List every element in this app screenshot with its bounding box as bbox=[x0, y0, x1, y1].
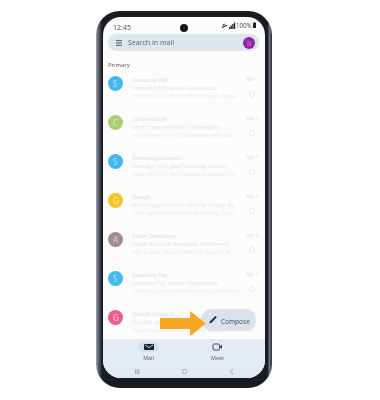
button[interactable]: Navigation menu bbox=[108, 34, 259, 51]
staticText: Samsung Pay Service Registration bbox=[132, 279, 246, 286]
staticText: Mail bbox=[133, 354, 164, 361]
staticText: Samsung account - bbox=[132, 154, 242, 162]
staticText: Apr 2 bbox=[246, 232, 260, 239]
staticText: S bbox=[113, 78, 118, 89]
staticText: C bbox=[113, 117, 119, 128]
button[interactable]: G bbox=[103, 298, 265, 337]
staticText: Google Account bbox=[132, 310, 242, 318]
staticText: New sign in to your Samsung account fro bbox=[132, 170, 246, 177]
staticText: Do more on your Chromebook with thes bbox=[132, 131, 246, 138]
other: Navigation menu bbox=[116, 40, 122, 46]
staticText: New recognition that security of your Go bbox=[132, 201, 246, 208]
staticText: Primary bbox=[108, 61, 130, 69]
button[interactable]: Back bbox=[225, 365, 238, 378]
button[interactable]: Account bbox=[243, 37, 255, 49]
staticText: Compose bbox=[221, 317, 250, 326]
staticText: Meet bbox=[202, 354, 233, 361]
staticText: G bbox=[113, 195, 119, 206]
button[interactable]: S bbox=[103, 259, 265, 298]
staticText: Apr 7 bbox=[246, 154, 260, 161]
staticText: Samsung Pay Service Registration bbox=[132, 84, 246, 91]
staticText: Continue your notification congratulatio… bbox=[132, 92, 246, 99]
button[interactable]: C bbox=[103, 103, 265, 142]
button[interactable]: S bbox=[103, 142, 265, 181]
staticText: Apple Developer bbox=[132, 232, 242, 240]
staticText: Security alert for your linked Google bbox=[132, 318, 246, 325]
button[interactable]: S bbox=[103, 64, 265, 103]
button[interactable]: A bbox=[103, 220, 265, 259]
staticText: Apr 24 bbox=[246, 76, 260, 83]
staticText: Apr 1 bbox=[246, 271, 260, 278]
staticText: Apple Technical Developer Conference bbox=[132, 240, 246, 247]
button[interactable]: Meet bbox=[202, 340, 233, 364]
staticText: Samsung Pay bbox=[132, 76, 242, 84]
button[interactable]: Compose bbox=[201, 309, 256, 331]
staticText: S bbox=[113, 273, 118, 284]
staticText: A bbox=[113, 234, 119, 245]
staticText: B bbox=[247, 39, 252, 48]
staticText: Apr 2 bbox=[246, 193, 260, 200]
button[interactable]: G bbox=[103, 181, 265, 220]
staticText: S bbox=[113, 156, 118, 167]
staticText: 100% bbox=[236, 21, 252, 29]
staticText: Add a code. Apple WWDC22, reports th bbox=[132, 248, 246, 255]
staticText: What's new with your Chromebook bbox=[132, 123, 246, 130]
staticText: New sign-in to your Samsung account bbox=[132, 162, 246, 169]
staticText: Continue your notification congratulatio… bbox=[132, 287, 246, 294]
staticText: Your Google Account was just signed in bbox=[132, 326, 246, 333]
button[interactable]: Mail bbox=[133, 340, 164, 364]
staticText: Samsung Pay bbox=[132, 271, 242, 279]
button[interactable]: Recent apps bbox=[130, 365, 143, 378]
staticText: G bbox=[113, 312, 119, 323]
button[interactable]: Home bbox=[178, 365, 191, 378]
staticText: Mar 31 bbox=[246, 310, 260, 317]
staticText: Chromebook bbox=[132, 115, 242, 123]
staticText: Apr 7 bbox=[246, 115, 260, 122]
staticText: Your sign in Grand Mills Marketing Co ou bbox=[132, 209, 246, 216]
staticText: Google bbox=[132, 193, 242, 201]
staticText: 12:45 bbox=[113, 23, 131, 33]
staticText: Search in mail bbox=[128, 38, 175, 48]
